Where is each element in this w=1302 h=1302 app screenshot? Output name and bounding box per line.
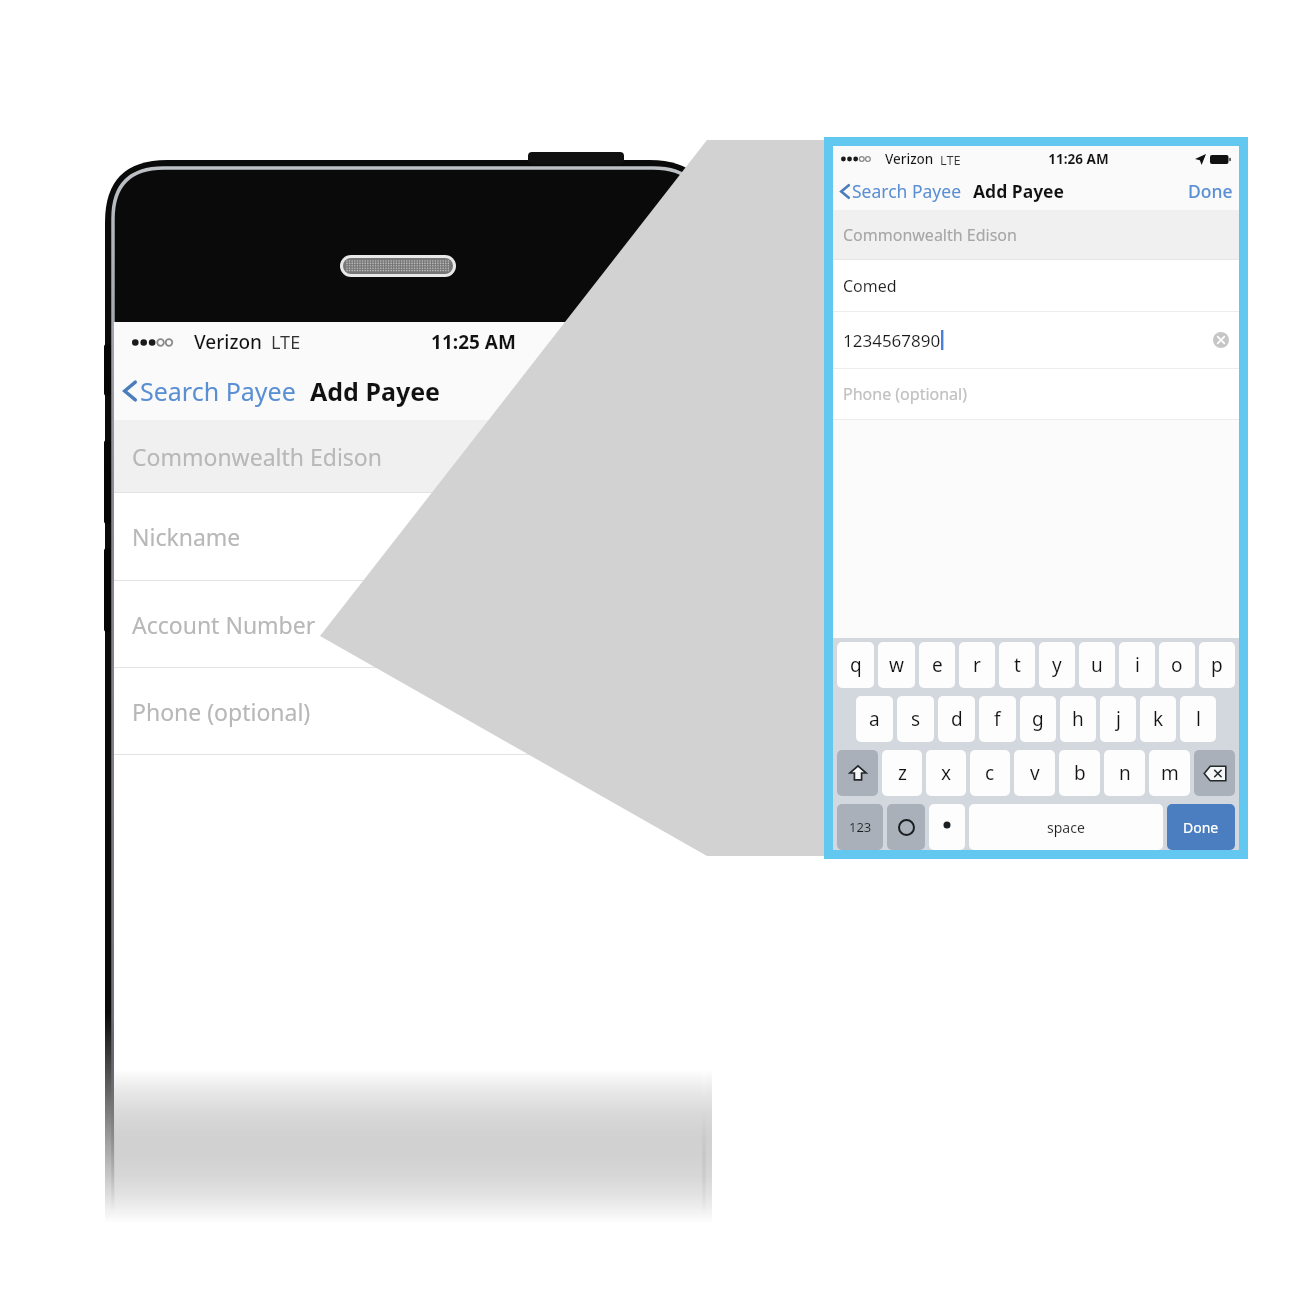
button[interactable]: e	[919, 642, 955, 688]
staticText: z	[898, 760, 907, 786]
staticText: Comed	[843, 275, 897, 297]
staticText: s	[911, 706, 921, 732]
staticText: e	[932, 652, 943, 678]
button[interactable]: Emoji	[887, 804, 925, 850]
staticText: Phone (optional)	[132, 696, 311, 727]
button[interactable]: y	[1039, 642, 1075, 688]
button[interactable]: f	[979, 696, 1016, 742]
staticText: 11:25 AM	[431, 329, 516, 355]
staticText: c	[985, 760, 995, 786]
staticText: Verizon	[194, 329, 262, 355]
staticText: Commonwealth Edison	[843, 224, 1017, 246]
button[interactable]: Account Number	[114, 580, 714, 667]
button[interactable]: v	[1014, 750, 1055, 796]
staticText: Search Payee	[852, 179, 962, 203]
staticText: t	[1014, 652, 1021, 678]
staticText: Add Payee	[310, 374, 441, 408]
button[interactable]: Backspace	[1194, 750, 1235, 796]
button[interactable]: Phone (optional)	[114, 667, 714, 754]
button[interactable]: i	[1119, 642, 1155, 688]
staticText: Nickname	[132, 521, 241, 552]
staticText: f	[994, 706, 1001, 732]
staticText: 123	[849, 818, 872, 836]
staticText: Account Number	[132, 609, 316, 640]
button[interactable]: g	[1020, 696, 1056, 742]
staticText: Search Payee	[140, 374, 296, 408]
button[interactable]: Search Payee	[837, 176, 965, 206]
staticText: j	[1116, 706, 1121, 732]
button[interactable]: u	[1079, 642, 1115, 688]
staticText: Add Payee	[973, 179, 1065, 203]
button[interactable]: Search Payee	[120, 371, 299, 411]
staticText: q	[850, 652, 862, 678]
button[interactable]: a	[856, 696, 893, 742]
button[interactable]: r	[959, 642, 995, 688]
button[interactable]: Done	[1182, 176, 1239, 206]
staticText: d	[951, 706, 963, 732]
staticText: LTE	[940, 151, 961, 168]
staticText: r	[973, 652, 981, 678]
staticText: Commonwealth Edison	[132, 441, 382, 472]
button[interactable]: Comed	[833, 260, 1239, 311]
staticText: y	[1052, 652, 1062, 678]
button[interactable]: Shift	[837, 750, 878, 796]
button[interactable]: l	[1180, 696, 1216, 742]
button[interactable]: p	[1199, 642, 1235, 688]
button[interactable]: m	[1149, 750, 1190, 796]
staticText: x	[941, 760, 952, 786]
staticText: Verizon	[885, 150, 934, 168]
button[interactable]: n	[1104, 750, 1145, 796]
staticText: l	[1196, 706, 1201, 732]
staticText: 11:26 AM	[1048, 150, 1109, 168]
staticText: 1234567890	[843, 329, 941, 352]
staticText: Phone (optional)	[843, 383, 968, 405]
staticText: i	[1135, 652, 1140, 678]
staticText: Done	[1183, 818, 1219, 837]
button[interactable]: Clear text	[1213, 332, 1229, 348]
staticText: u	[1091, 652, 1103, 678]
button[interactable]: z	[882, 750, 922, 796]
staticText: Done	[1188, 179, 1233, 203]
button[interactable]: Phone (optional)	[833, 369, 1239, 419]
staticText: m	[1161, 760, 1179, 786]
button[interactable]: h	[1060, 696, 1096, 742]
button[interactable]: t	[999, 642, 1035, 688]
button[interactable]: 1234567890	[833, 312, 1239, 368]
button[interactable]: d	[938, 696, 975, 742]
button[interactable]: w	[878, 642, 915, 688]
button[interactable]: Dictation	[929, 804, 965, 850]
button[interactable]: s	[897, 696, 934, 742]
button[interactable]: Commonwealth Edison	[833, 210, 1239, 259]
staticText: o	[1171, 652, 1183, 678]
staticText: v	[1030, 760, 1040, 786]
staticText: a	[869, 706, 880, 732]
button[interactable]: x	[926, 750, 966, 796]
staticText: space	[1047, 818, 1085, 837]
staticText: n	[1119, 760, 1131, 786]
button[interactable]: space	[969, 804, 1163, 850]
button[interactable]: q	[837, 642, 874, 688]
button[interactable]: c	[970, 750, 1010, 796]
staticText: w	[889, 652, 904, 678]
button[interactable]: k	[1140, 696, 1176, 742]
staticText: p	[1211, 652, 1223, 678]
button[interactable]: Done	[1167, 804, 1235, 850]
staticText: g	[1032, 706, 1044, 732]
button[interactable]: j	[1100, 696, 1136, 742]
staticText: LTE	[271, 330, 301, 355]
button[interactable]: o	[1159, 642, 1195, 688]
button[interactable]: Commonwealth Edison	[114, 420, 714, 492]
button[interactable]: b	[1059, 750, 1100, 796]
button[interactable]: Nickname	[114, 492, 714, 580]
staticText: h	[1072, 706, 1084, 732]
staticText: k	[1153, 706, 1164, 732]
staticText: b	[1074, 760, 1086, 786]
button[interactable]: Numbers	[837, 804, 883, 850]
